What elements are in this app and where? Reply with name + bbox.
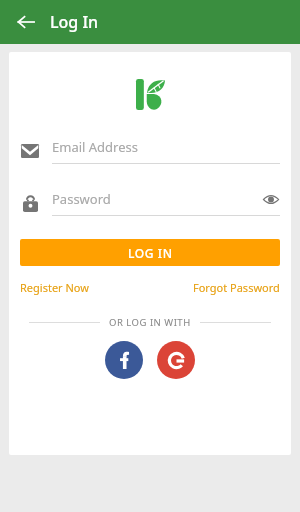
button[interactable]: Forgot Password <box>193 280 280 295</box>
button[interactable]: Back <box>10 6 42 38</box>
button[interactable]: Email Address <box>20 136 280 166</box>
button[interactable]: LOG IN <box>20 239 280 266</box>
staticText: OR LOG IN WITH <box>109 316 191 329</box>
staticText: Log In <box>50 11 99 33</box>
staticText: Password <box>52 190 262 208</box>
button[interactable]: Log in with Facebook <box>105 341 143 379</box>
staticText: Email Address <box>52 138 280 156</box>
staticText: LOG IN <box>128 245 173 261</box>
staticText: Forgot Password <box>193 280 280 295</box>
button[interactable]: Password <box>20 188 280 218</box>
button[interactable]: Show password <box>262 190 280 208</box>
staticText: Register Now <box>20 280 89 295</box>
button[interactable]: Log in with Google <box>157 341 195 379</box>
button[interactable]: Register Now <box>20 280 89 295</box>
